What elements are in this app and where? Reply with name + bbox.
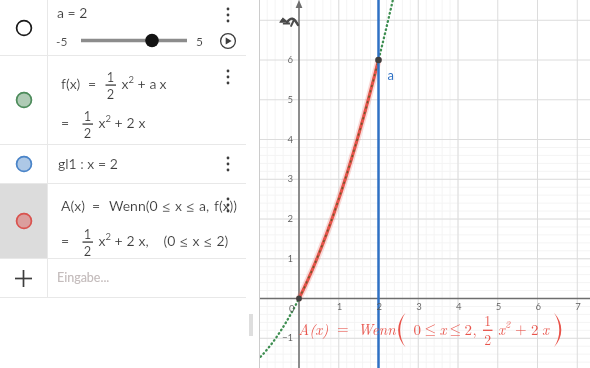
staticText: gl1 : x = 2 <box>58 155 118 172</box>
button[interactable]: Add input <box>0 259 47 297</box>
button[interactable]: More options <box>218 5 238 25</box>
staticText: 5 <box>196 34 203 48</box>
staticText: -5 <box>56 34 68 48</box>
button[interactable]: Play animation <box>218 31 238 51</box>
button[interactable]: Toggle visibility <box>0 184 47 258</box>
button[interactable]: More options <box>48 56 259 144</box>
button[interactable]: Eingabe... <box>48 259 259 297</box>
button[interactable]: Toggle visibility <box>0 56 47 144</box>
button[interactable]: More options <box>218 195 238 215</box>
button[interactable]: a = 2 <box>48 0 259 55</box>
button[interactable]: Toggle visibility <box>0 145 47 183</box>
button[interactable]: More options <box>48 184 259 258</box>
staticText: a = 2 <box>57 4 88 21</box>
button[interactable]: More options <box>218 67 238 87</box>
button[interactable]: More options <box>218 154 238 174</box>
staticText: Eingabe... <box>57 270 110 285</box>
button[interactable]: gl1 : x = 2 <box>48 145 259 183</box>
button[interactable]: Toggle visibility <box>0 0 47 55</box>
